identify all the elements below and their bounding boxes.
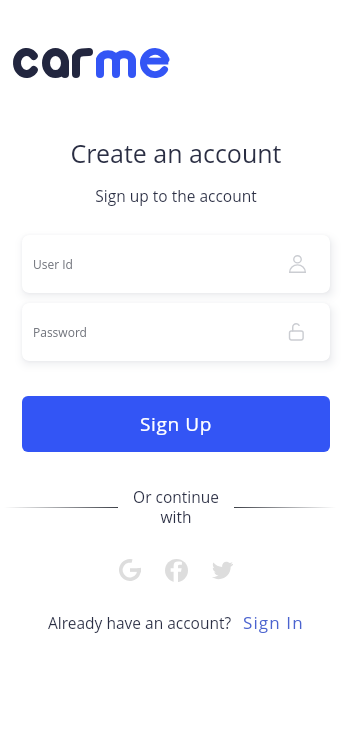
button[interactable]: Sign In — [243, 611, 304, 634]
button[interactable]: Password — [22, 303, 330, 361]
button[interactable]: Sign up with Twitter — [204, 552, 240, 588]
staticText: Sign In — [243, 611, 304, 634]
button[interactable]: Sign Up — [22, 396, 330, 452]
staticText: Password — [33, 324, 289, 340]
staticText: Already have an account? — [48, 612, 232, 633]
button[interactable]: User Id — [22, 235, 330, 293]
button[interactable]: Sign up with Facebook — [158, 552, 194, 588]
staticText: Or continue with — [118, 486, 234, 528]
staticText: Sign up to the account — [0, 185, 352, 206]
staticText: User Id — [33, 256, 289, 272]
staticText: Create an account — [0, 136, 352, 170]
button[interactable]: Sign up with Google — [112, 552, 148, 588]
staticText: Sign Up — [140, 411, 212, 437]
